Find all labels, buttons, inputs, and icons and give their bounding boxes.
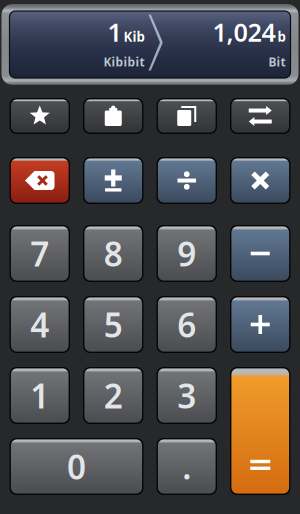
button[interactable]: 5 xyxy=(83,296,143,353)
staticText: 9 xyxy=(177,231,196,276)
staticText: 7 xyxy=(30,231,49,276)
staticText: Bit xyxy=(268,54,285,70)
button[interactable]: Divide xyxy=(156,157,217,204)
staticText: 6 xyxy=(177,302,196,347)
button[interactable]: Equals xyxy=(230,367,290,495)
staticText: 5 xyxy=(104,302,123,347)
staticText: 1,024 xyxy=(212,15,275,49)
button[interactable]: Swap units xyxy=(230,98,290,134)
staticText: b xyxy=(277,28,285,45)
button[interactable]: 9 xyxy=(156,225,217,282)
button[interactable]: 7 xyxy=(9,225,70,282)
button[interactable]: 8 xyxy=(83,225,143,282)
staticText: 3 xyxy=(177,373,196,418)
staticText: Kib xyxy=(123,28,144,45)
button[interactable]: 6 xyxy=(156,296,217,353)
staticText: . xyxy=(182,444,191,489)
staticText: 8 xyxy=(104,231,123,276)
button[interactable]: Favorites xyxy=(9,98,70,134)
button[interactable]: 3 xyxy=(156,367,217,424)
button[interactable]: . xyxy=(156,438,217,495)
button[interactable]: Plus or minus xyxy=(83,157,143,204)
staticText: 4 xyxy=(30,302,49,347)
button[interactable]: Minus xyxy=(230,225,290,282)
staticText: 0 xyxy=(67,444,86,489)
button[interactable]: 1 xyxy=(9,367,70,424)
button[interactable]: Paste xyxy=(83,98,143,134)
button[interactable]: 0 xyxy=(9,438,143,495)
staticText: 2 xyxy=(104,373,123,418)
staticText: Kibibit xyxy=(103,54,144,70)
staticText: 1 xyxy=(30,373,49,418)
button[interactable]: Plus xyxy=(230,296,290,353)
button[interactable]: Copy xyxy=(156,98,217,134)
button[interactable]: 2 xyxy=(83,367,143,424)
button[interactable]: 4 xyxy=(9,296,70,353)
button[interactable]: Multiply xyxy=(230,157,290,204)
staticText: 1 xyxy=(107,15,121,49)
button[interactable]: Delete xyxy=(9,157,70,204)
